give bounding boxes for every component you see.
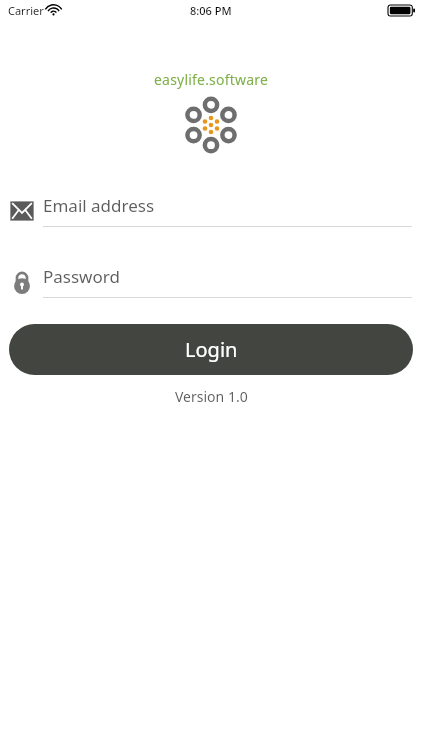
staticText: easylife.software [154, 70, 268, 89]
staticText: Login [185, 336, 238, 363]
staticText: Version 1.0 [175, 387, 248, 406]
button[interactable]: Password [0, 265, 422, 298]
staticText: Email address [43, 194, 155, 217]
button[interactable]: Email [0, 194, 422, 227]
staticText: Password [43, 265, 120, 288]
button[interactable]: Login [9, 324, 413, 375]
staticText: Carrier [8, 3, 44, 18]
other: Password [10, 270, 34, 294]
staticText: 8:06 PM [190, 3, 232, 18]
other: Email [10, 199, 34, 223]
